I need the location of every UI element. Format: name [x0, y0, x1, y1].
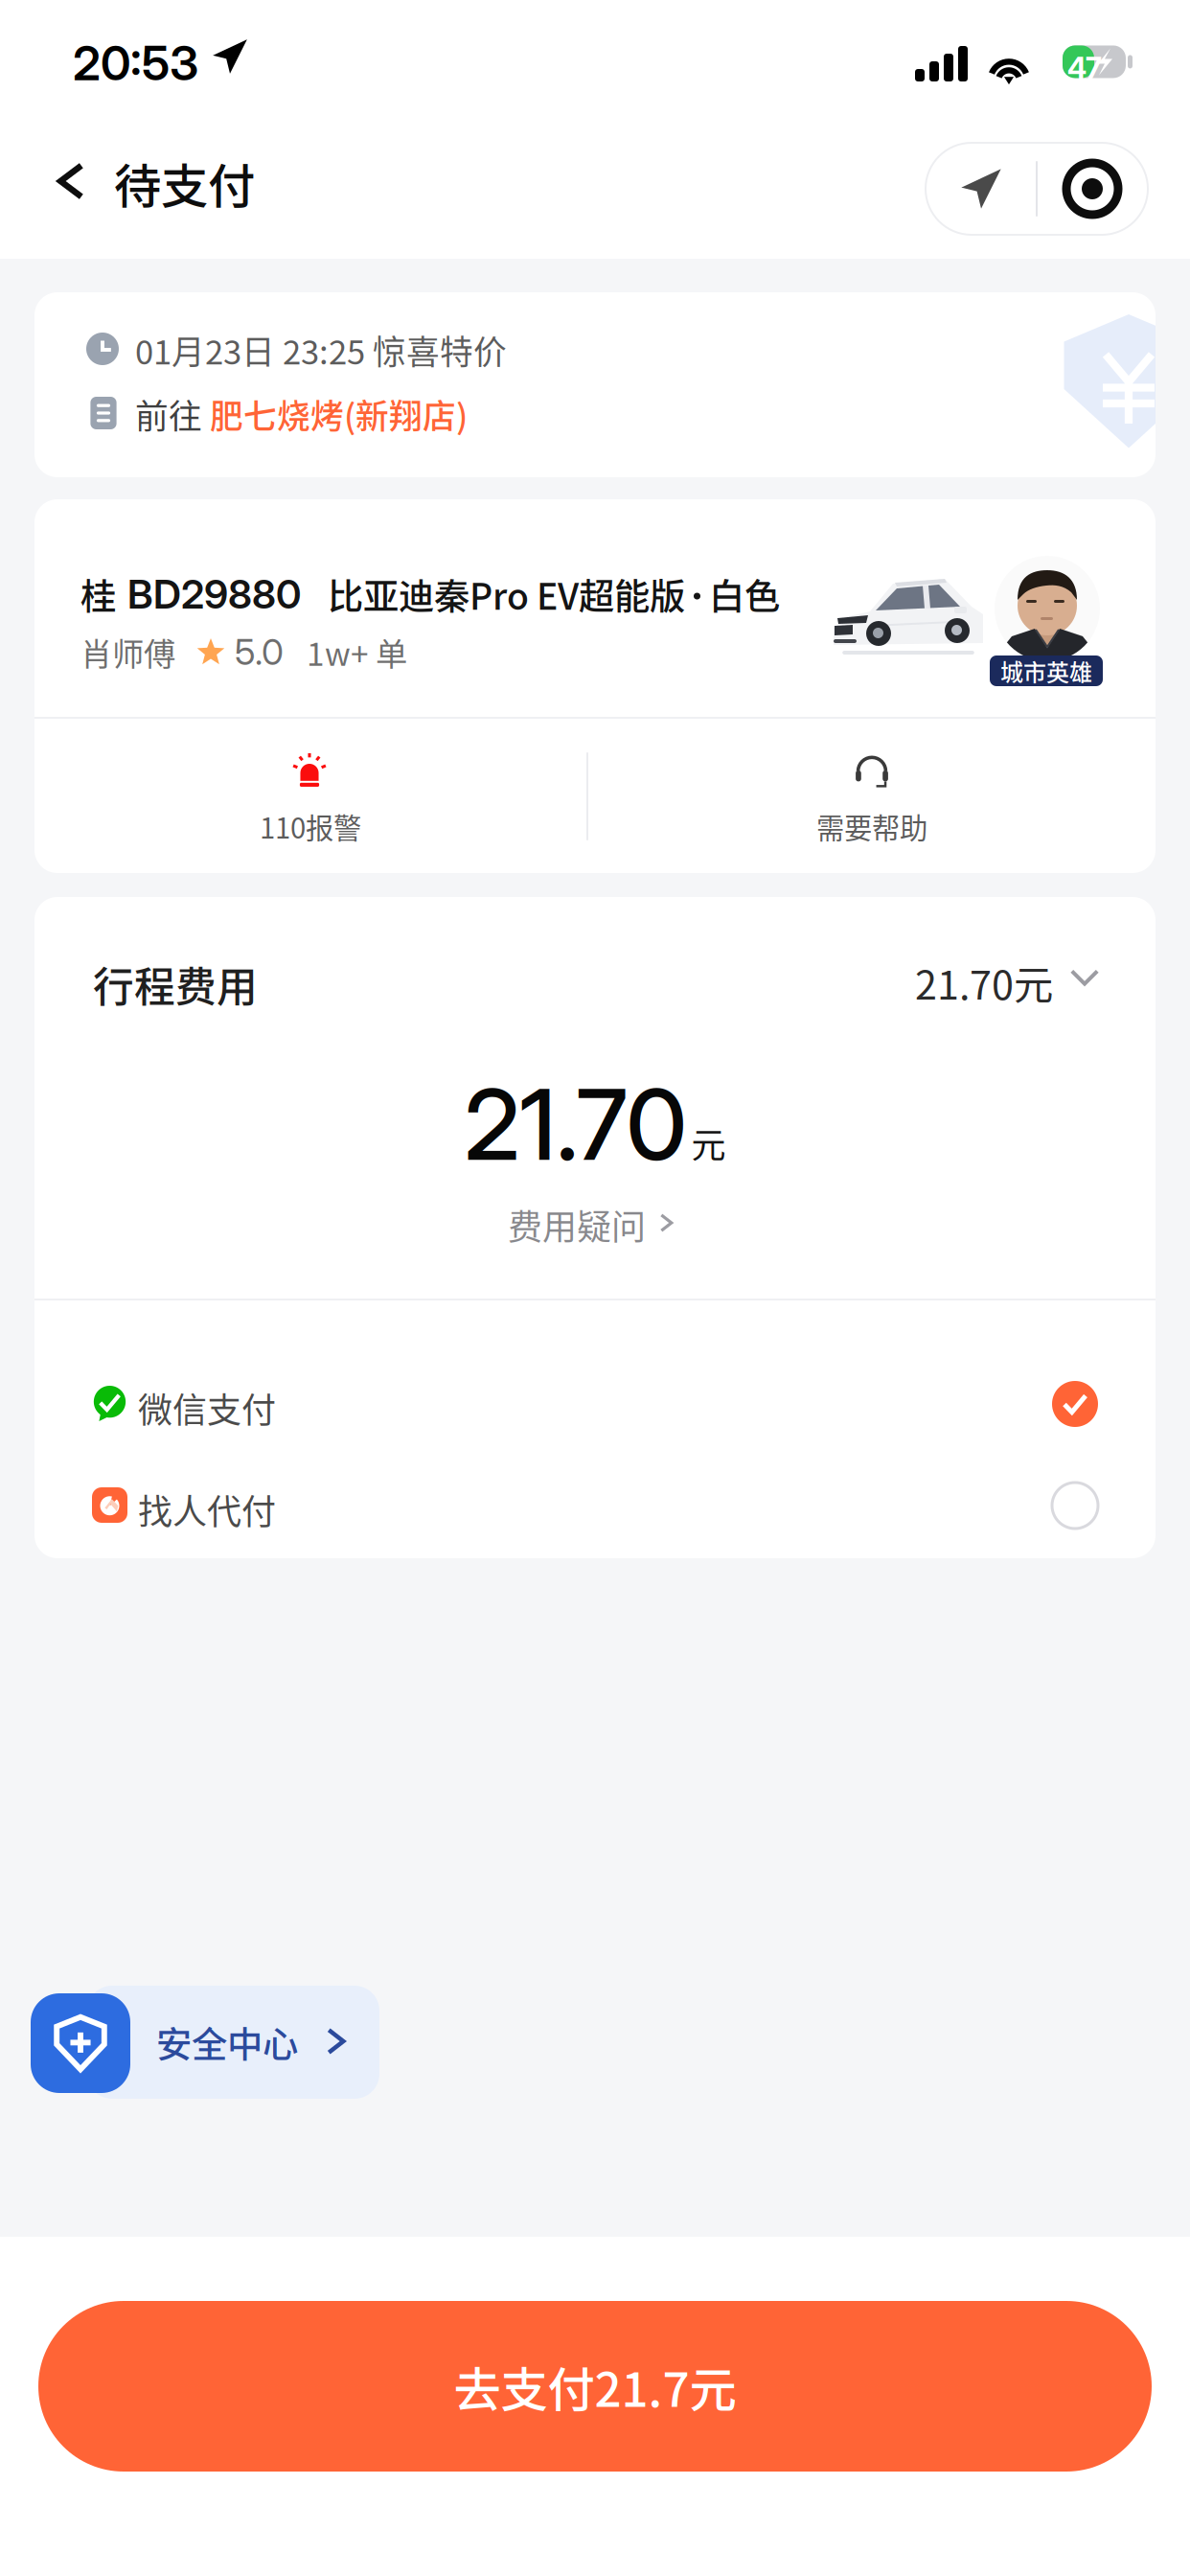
staticText: 行程费用 [93, 954, 258, 1014]
staticText: 城市英雄 [1000, 654, 1092, 688]
button[interactable]: Record trip [1038, 143, 1147, 235]
staticText: 白色 [709, 568, 780, 620]
button[interactable]: 微信支付 [34, 1370, 1156, 1437]
staticText: 桂 [80, 568, 116, 620]
staticText: 费用疑问 [508, 1200, 646, 1250]
button[interactable]: 去支付21.7元 [38, 2301, 1152, 2472]
staticText: 待支付 [114, 149, 255, 217]
staticText: 微信支付 [138, 1383, 276, 1433]
button[interactable]: 找人代付 [34, 1472, 1156, 1539]
staticText: 110报警 [260, 806, 361, 847]
staticText: 肖师傅 [80, 629, 175, 675]
staticText: 元 [691, 1118, 726, 1168]
staticText: 5.0 [235, 630, 284, 673]
staticText: 01月23日 23:25 惊喜特价 [135, 326, 507, 374]
staticText: 肥七烧烤(新翔店) [210, 390, 468, 438]
staticText: BD29880 [127, 570, 301, 618]
button[interactable]: 费用疑问 [34, 1196, 1156, 1246]
button[interactable]: 安全中心 [0, 1978, 402, 2106]
button[interactable]: 行程费用 [34, 897, 1156, 1036]
staticText: 1w+ 单 [307, 629, 407, 675]
staticText: 47 [1067, 50, 1102, 86]
staticText: 21.70元 [915, 954, 1053, 1011]
staticText: 21.70 [464, 1066, 687, 1183]
staticText: 去支付21.7元 [454, 2352, 736, 2420]
staticText: 比亚迪秦Pro EV超能版 [328, 568, 685, 620]
staticText: 20:53 [73, 34, 198, 92]
staticText: 找人代付 [138, 1484, 276, 1534]
staticText: 前往 [135, 390, 210, 438]
button[interactable]: 待支付 [0, 148, 287, 228]
button[interactable]: 需要帮助 [588, 719, 1156, 873]
button[interactable]: Navigate to destination [927, 143, 1036, 235]
staticText: 需要帮助 [816, 806, 927, 847]
button[interactable]: 110报警 [34, 719, 586, 873]
staticText: 安全中心 [156, 2016, 298, 2068]
